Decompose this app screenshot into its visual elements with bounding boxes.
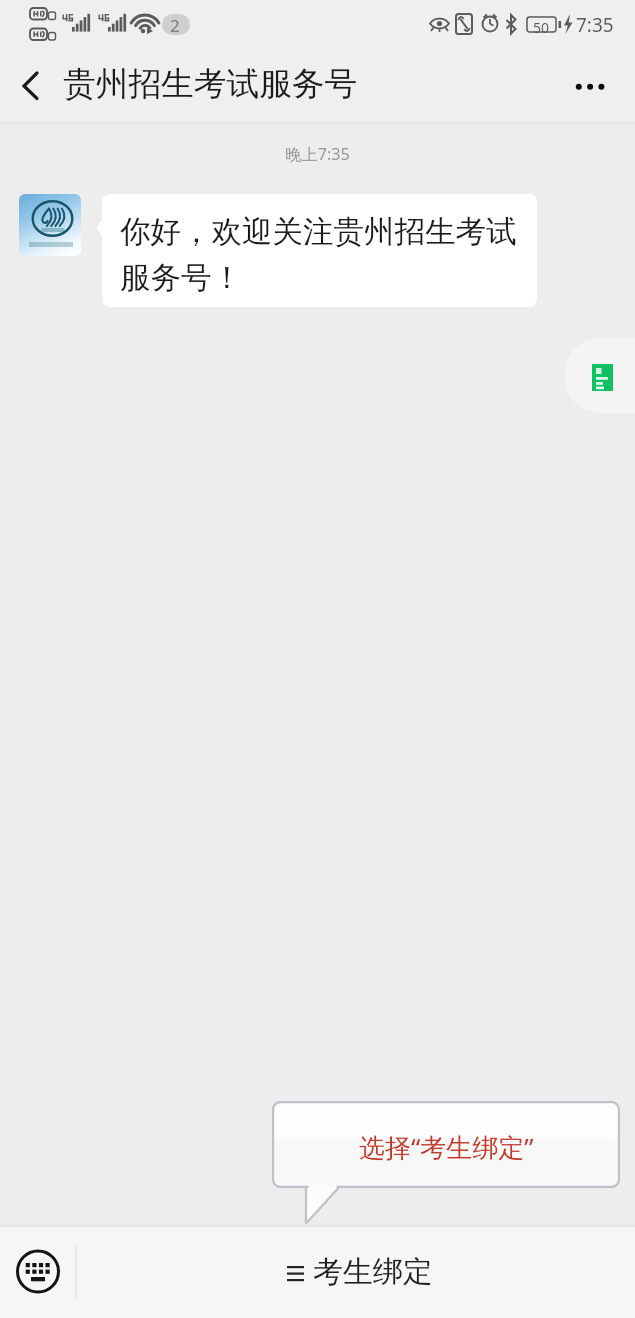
staticText: 2 [170,14,180,37]
staticText: 你好，欢迎关注贵州招生考试服务号！ [120,213,533,297]
button[interactable]: Back [0,52,56,125]
staticText: 50 [533,18,550,37]
staticText: 7:35 [576,12,614,38]
button[interactable]: Service menu [565,338,635,413]
button[interactable]: Keyboard [5,1225,71,1318]
staticText: 选择“考生绑定” [359,1129,534,1165]
button[interactable]: 你好，欢迎关注贵州招生考试服务号！ [102,194,537,307]
button[interactable]: Avatar [19,194,81,256]
button[interactable]: 考生绑定 [76,1225,635,1318]
staticText: 晚上7:35 [0,143,635,165]
button[interactable]: 选择“考生绑定” [272,1101,620,1188]
button[interactable]: More options [565,52,635,125]
staticText: 考生绑定 [313,1253,433,1291]
staticText: 贵州招生考试服务号 [63,64,358,105]
